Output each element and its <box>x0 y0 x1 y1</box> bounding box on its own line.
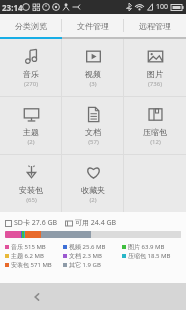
staticText: (57) <box>88 138 99 146</box>
staticText: 压缩包 18.5 MB <box>128 252 171 260</box>
staticText: 图片 <box>147 69 163 79</box>
staticText: 视频 <box>85 69 101 79</box>
staticText: 主题 6.2 MB <box>11 252 44 260</box>
button[interactable]: 收藏夹 <box>62 155 124 212</box>
staticText: 收藏夹 <box>81 185 105 195</box>
staticText: (12) <box>150 138 161 146</box>
button[interactable]: 压缩包 <box>124 97 186 154</box>
staticText: (65) <box>26 196 37 204</box>
staticText: 图片 63.9 MB <box>128 243 165 251</box>
staticText: 100 <box>156 2 169 12</box>
button[interactable]: 主题 <box>0 97 62 154</box>
button[interactable]: Back <box>26 286 48 308</box>
staticText: 主题 <box>23 127 39 137</box>
button[interactable]: 远程管理 <box>124 14 186 37</box>
button[interactable]: 分类浏览 <box>0 14 62 37</box>
staticText: 文档 2.3 MB <box>69 252 102 260</box>
button[interactable]: 图片 <box>124 39 186 96</box>
staticText: (736) <box>148 80 162 88</box>
button[interactable]: 视频 <box>62 39 124 96</box>
staticText: SD卡 27.6 GB <box>14 218 58 228</box>
staticText: 其它 1.9 GB <box>69 261 101 269</box>
staticText: 视频 25.6 MB <box>69 243 106 251</box>
button[interactable]: 安装包 <box>0 155 62 212</box>
button[interactable]: 文件管理 <box>62 14 124 37</box>
button[interactable]: 文档 <box>62 97 124 154</box>
staticText: (270) <box>24 80 38 88</box>
staticText: 压缩包 <box>143 127 167 137</box>
staticText: 安装包 571 MB <box>11 261 52 269</box>
staticText: 文件管理 <box>77 21 109 31</box>
staticText: (2) <box>27 138 35 146</box>
staticText: 安装包 <box>19 185 43 195</box>
staticText: 分类浏览 <box>15 21 47 31</box>
staticText: (3) <box>89 80 97 88</box>
staticText: 文档 <box>85 127 101 137</box>
staticText: 可用 24.4 GB <box>75 218 117 228</box>
staticText: 音乐 515 MB <box>11 243 46 251</box>
staticText: 音乐 <box>23 69 39 79</box>
staticText: (2) <box>89 196 97 204</box>
staticText: 远程管理 <box>139 21 171 31</box>
button[interactable]: 音乐 <box>0 39 62 96</box>
staticText: 23:14 <box>2 2 23 13</box>
